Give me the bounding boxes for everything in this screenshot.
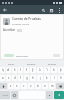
staticText: d: [14, 76, 16, 80]
staticText: c: [23, 84, 25, 88]
staticText: Acceditar: [3, 28, 16, 32]
button[interactable]: 4: [18, 67, 23, 73]
staticText: 5: [26, 67, 28, 69]
button[interactable]: 7: [37, 67, 43, 73]
staticText: 8: [46, 67, 48, 69]
button[interactable]: 8: [44, 67, 50, 73]
button[interactable]: Numbers: [0, 91, 10, 99]
staticText: gracias: [48, 62, 57, 65]
button[interactable]: x: [14, 83, 20, 89]
staticText: b: [37, 84, 39, 88]
staticText: f: [20, 76, 21, 80]
button[interactable]: 0: [58, 67, 64, 73]
staticText: s: [8, 76, 10, 80]
staticText: j: [40, 76, 41, 80]
staticText: l: [54, 76, 55, 80]
button[interactable]: ñ: [58, 75, 64, 81]
button[interactable]: m: [49, 83, 55, 89]
button[interactable]: s: [6, 75, 11, 81]
staticText: z: [10, 84, 12, 88]
staticText: u: [39, 68, 41, 72]
button[interactable]: 3: [12, 67, 17, 73]
staticText: r: [20, 68, 22, 72]
button[interactable]: n: [42, 83, 48, 89]
staticText: k: [46, 76, 48, 80]
button[interactable]: gracias: [42, 60, 63, 66]
staticText: 7: [39, 67, 41, 69]
staticText: p: [60, 68, 62, 72]
button[interactable]: Period: [46, 91, 53, 99]
staticText: 4: [20, 67, 22, 69]
staticText: serás: [8, 62, 14, 65]
staticText: e: [14, 68, 16, 72]
staticText: v: [30, 84, 32, 88]
staticText: w: [7, 68, 10, 72]
staticText: 3: [14, 67, 16, 69]
staticText: Cuenta de Pruebas: [12, 17, 41, 21]
staticText: 0: [60, 67, 62, 69]
staticText: esperar: [27, 62, 36, 65]
button[interactable]: 5: [24, 67, 29, 73]
button[interactable]: 2: [6, 67, 11, 73]
button[interactable]: f: [18, 75, 23, 81]
button[interactable]: 6: [30, 67, 36, 73]
staticText: i: [47, 68, 48, 72]
staticText: o: [53, 68, 55, 72]
button[interactable]: Send: [54, 91, 64, 99]
staticText: t: [26, 68, 28, 72]
button[interactable]: c: [21, 83, 27, 89]
staticText: 6: [32, 67, 34, 69]
staticText: 9: [53, 67, 55, 69]
button[interactable]: z: [8, 83, 13, 89]
button[interactable]: v: [28, 83, 34, 89]
staticText: ?123: [3, 94, 8, 97]
button[interactable]: More options: [56, 7, 62, 13]
staticText: q: [2, 68, 4, 72]
staticText: Pruebas correo: [12, 22, 30, 25]
button[interactable]: Cuenta de Pruebas: [1, 15, 63, 59]
button[interactable]: k: [44, 75, 50, 81]
button[interactable]: Emoji: [11, 91, 18, 99]
staticText: n: [44, 84, 46, 88]
staticText: h: [32, 76, 34, 80]
button[interactable]: Back: [0, 5, 9, 14]
button[interactable]: b: [35, 83, 41, 89]
button[interactable]: Search: [40, 7, 46, 13]
button[interactable]: l: [51, 75, 57, 81]
staticText: 1: [2, 67, 4, 69]
button[interactable]: a: [0, 75, 5, 81]
staticText: Responder: [16, 54, 29, 57]
button[interactable]: Archive: [48, 7, 54, 13]
button[interactable]: g: [24, 75, 29, 81]
button[interactable]: h: [30, 75, 36, 81]
staticText: g: [26, 76, 28, 80]
button[interactable]: j: [37, 75, 43, 81]
staticText: a: [2, 76, 4, 80]
button[interactable]: 9: [51, 67, 57, 73]
staticText: 2: [8, 67, 10, 69]
button[interactable]: esperar: [21, 60, 42, 66]
button[interactable]: serás: [1, 60, 21, 66]
staticText: y: [32, 68, 34, 72]
button[interactable]: d: [12, 75, 17, 81]
button[interactable]: [4, 54, 14, 57]
staticText: x: [16, 84, 18, 88]
button[interactable]: Shift: [0, 83, 7, 89]
button[interactable]: 1: [0, 67, 5, 73]
staticText: m: [51, 84, 54, 88]
button[interactable]: Backspace: [56, 83, 64, 89]
staticText: ñ: [60, 76, 62, 80]
